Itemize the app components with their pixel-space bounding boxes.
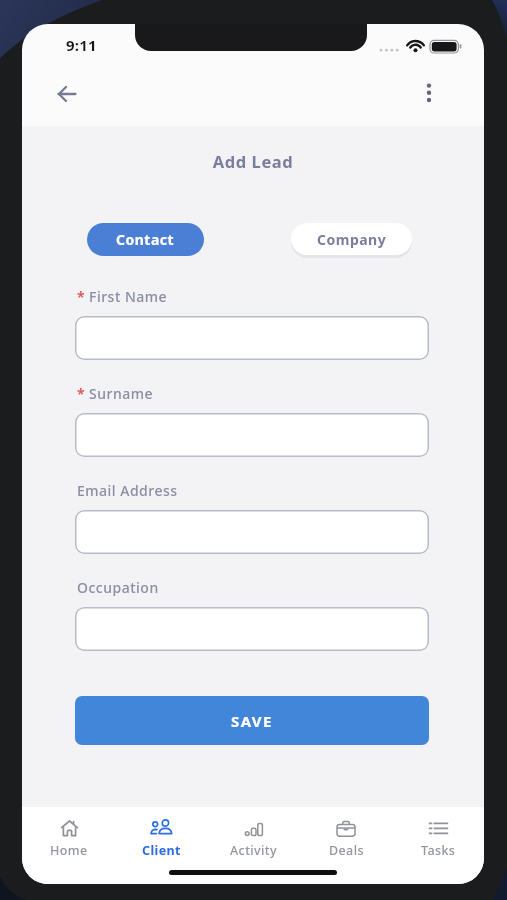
button[interactable]	[75, 413, 429, 457]
button[interactable]: Tasks	[392, 810, 484, 870]
staticText: First Name	[89, 287, 168, 306]
staticText: Home	[50, 842, 88, 859]
staticText: *	[77, 384, 89, 403]
staticText: Email Address	[77, 481, 178, 500]
staticText: Client	[142, 842, 181, 859]
staticText: Activity	[230, 842, 278, 859]
staticText: 9:11	[66, 35, 97, 55]
button[interactable]	[414, 74, 444, 114]
button[interactable]	[75, 607, 429, 651]
button[interactable]: Company	[291, 223, 412, 255]
staticText: Company	[317, 230, 387, 249]
staticText: Deals	[329, 842, 364, 859]
staticText: Add Lead	[22, 150, 484, 172]
button[interactable]: Contact	[87, 223, 204, 256]
button[interactable]	[75, 316, 429, 360]
button[interactable]: Activity	[208, 810, 300, 870]
button[interactable]	[50, 77, 84, 111]
button[interactable]: SAVE	[75, 696, 429, 745]
staticText: SAVE	[231, 711, 273, 731]
staticText: Surname	[89, 384, 153, 403]
staticText: Tasks	[421, 842, 456, 859]
button[interactable]: Deals	[300, 810, 392, 870]
staticText: Occupation	[77, 578, 159, 597]
button[interactable]: Client	[115, 810, 208, 870]
staticText: *	[77, 287, 89, 306]
button[interactable]	[75, 510, 429, 554]
staticText: Contact	[116, 230, 175, 249]
button[interactable]: Home	[22, 810, 115, 870]
